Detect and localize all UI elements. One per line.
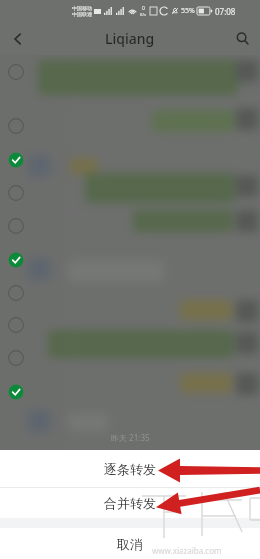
button[interactable]: Back [0, 22, 36, 55]
staticText: 55% [181, 6, 195, 16]
button[interactable]: Selected [6, 250, 26, 270]
staticText: K/s [140, 12, 146, 17]
staticText: 中国移动 [72, 5, 92, 11]
button[interactable]: 合并转发 [0, 488, 260, 518]
button[interactable]: Selected [6, 382, 26, 402]
button[interactable]: Select [6, 183, 26, 203]
button[interactable]: Select [6, 116, 26, 136]
button[interactable]: 取消 [0, 528, 260, 559]
button[interactable]: Select [6, 348, 26, 368]
button[interactable]: Select [6, 62, 26, 82]
staticText: www.xiazaiba.com [152, 545, 222, 556]
button[interactable]: Search [224, 22, 260, 55]
staticText: 合并转发 [104, 495, 156, 511]
staticText: 0 [142, 5, 145, 12]
button[interactable]: Select [6, 283, 26, 303]
staticText: Liqiang [105, 29, 155, 48]
staticText: 中国联通 [72, 11, 92, 17]
staticText: 逐条转发 [104, 461, 156, 477]
button[interactable]: Select [6, 216, 26, 236]
button[interactable]: Select [6, 315, 26, 335]
staticText: 昨天 21:35 [111, 432, 150, 443]
button[interactable]: 逐条转发 [0, 450, 260, 487]
staticText: 07:08 [215, 6, 236, 17]
staticText: 取消 [117, 536, 143, 552]
button[interactable]: Selected [6, 150, 26, 170]
